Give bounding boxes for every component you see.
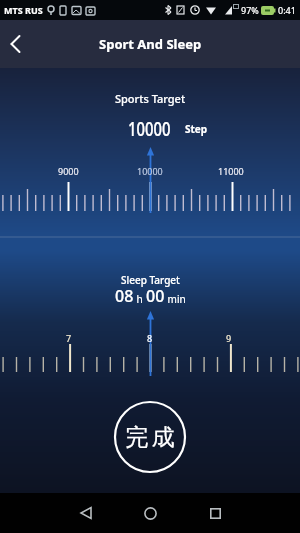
staticText: 0:41 xyxy=(278,4,296,16)
staticText: 8 xyxy=(147,332,153,344)
staticText: Step xyxy=(185,122,208,136)
staticText: 完成 xyxy=(124,423,176,452)
staticText: 97% xyxy=(241,4,259,16)
staticText: Sleep Target xyxy=(121,273,180,287)
button[interactable] xyxy=(0,20,31,68)
staticText: 08 xyxy=(115,285,134,307)
button[interactable] xyxy=(118,493,183,533)
staticText: h xyxy=(134,292,146,306)
button[interactable]: 完成 xyxy=(113,400,187,474)
staticText: 9000 xyxy=(58,165,79,177)
staticText: 00 xyxy=(146,285,165,307)
staticText: 9 xyxy=(226,332,232,344)
button[interactable] xyxy=(53,493,118,533)
staticText: 10000 xyxy=(128,116,171,142)
staticText: 11000 xyxy=(218,165,244,177)
button[interactable] xyxy=(183,493,248,533)
staticText: Sports Target xyxy=(115,91,186,106)
staticText: 7 xyxy=(66,332,72,344)
staticText: 10000 xyxy=(137,165,163,177)
staticText: min xyxy=(165,292,186,306)
staticText: Sport And Sleep xyxy=(99,35,202,53)
staticText: MTS RUS xyxy=(4,4,43,16)
